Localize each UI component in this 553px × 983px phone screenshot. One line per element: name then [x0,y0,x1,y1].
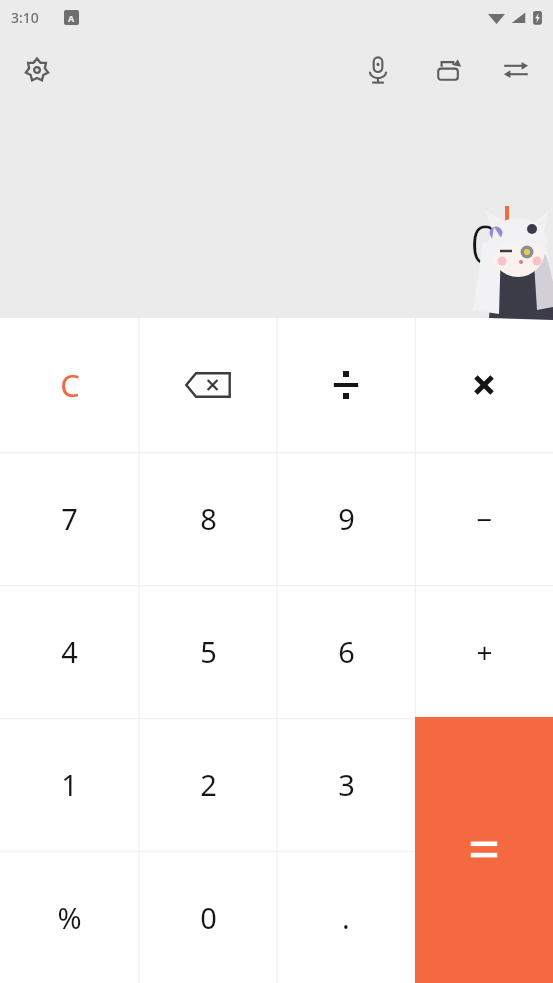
button[interactable]: 2 [139,718,277,851]
button[interactable]: − [415,452,553,585]
button[interactable]: 6 [277,585,415,718]
button[interactable] [277,318,415,452]
staticText: % [57,898,82,937]
button[interactable]: 1 [0,718,139,851]
staticText: 4 [61,632,78,671]
button[interactable]: Settings [14,47,60,93]
button[interactable]: 3 [277,718,415,851]
button[interactable]: C [0,318,139,452]
staticText: 7 [61,499,78,538]
button[interactable]: 9 [277,452,415,585]
staticText: 9 [338,499,355,538]
button[interactable] [415,318,553,452]
button[interactable]: 7 [0,452,139,585]
button[interactable]: % [0,851,139,983]
staticText: . [342,898,350,937]
staticText: − [476,500,493,538]
staticText: 5 [200,632,217,671]
other: Backspace [182,368,234,402]
staticText: + [476,633,493,671]
staticText: A [68,12,75,24]
button[interactable]: Backspace [139,318,277,452]
staticText: 1 [61,765,78,804]
button[interactable]: . [277,851,415,983]
staticText: 6 [338,632,355,671]
staticText: 8 [200,499,217,538]
button[interactable]: 4 [0,585,139,718]
button[interactable]: + [415,585,553,718]
button[interactable]: Voice input [355,47,401,93]
button[interactable]: Unit converter [493,47,539,93]
button[interactable]: 0 [139,851,277,983]
staticText: C [60,364,80,406]
staticText: 3 [338,765,355,804]
staticText: 3:10 [11,8,39,27]
staticText: 0 [470,206,501,280]
staticText: 0 [200,898,217,937]
staticText: 2 [200,765,217,804]
button[interactable] [415,717,553,983]
button[interactable]: Rotate screen [427,47,473,93]
button[interactable]: 5 [139,585,277,718]
button[interactable]: 8 [139,452,277,585]
